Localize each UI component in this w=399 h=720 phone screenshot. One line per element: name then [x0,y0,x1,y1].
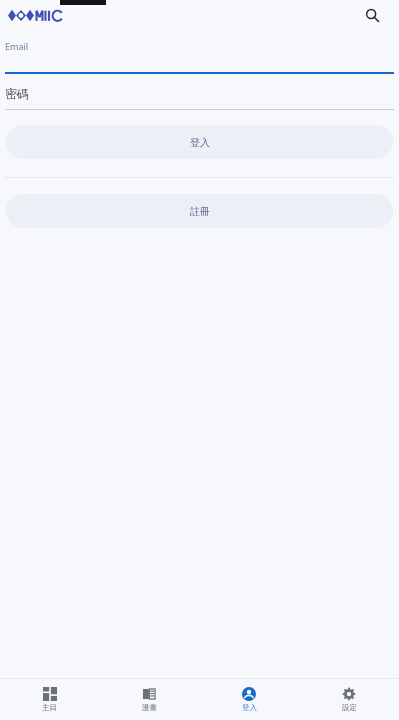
staticText: 設定 [342,703,357,712]
button[interactable]: 登入 [199,679,299,720]
button[interactable]: Search [359,2,385,28]
staticText: 登入 [190,136,210,149]
staticText: 漫畫 [142,703,157,712]
button[interactable]: 註冊 [6,194,393,228]
staticText: Email [5,40,29,52]
button[interactable]: 設定 [299,679,399,720]
staticText: 密碼 [5,86,29,101]
staticText: 登入 [242,703,257,712]
staticText: 主目 [42,703,57,712]
staticText: 註冊 [190,205,210,218]
button[interactable]: 漫畫 [99,679,199,720]
button[interactable]: 登入 [6,125,393,159]
button[interactable]: 主目 [0,679,99,720]
